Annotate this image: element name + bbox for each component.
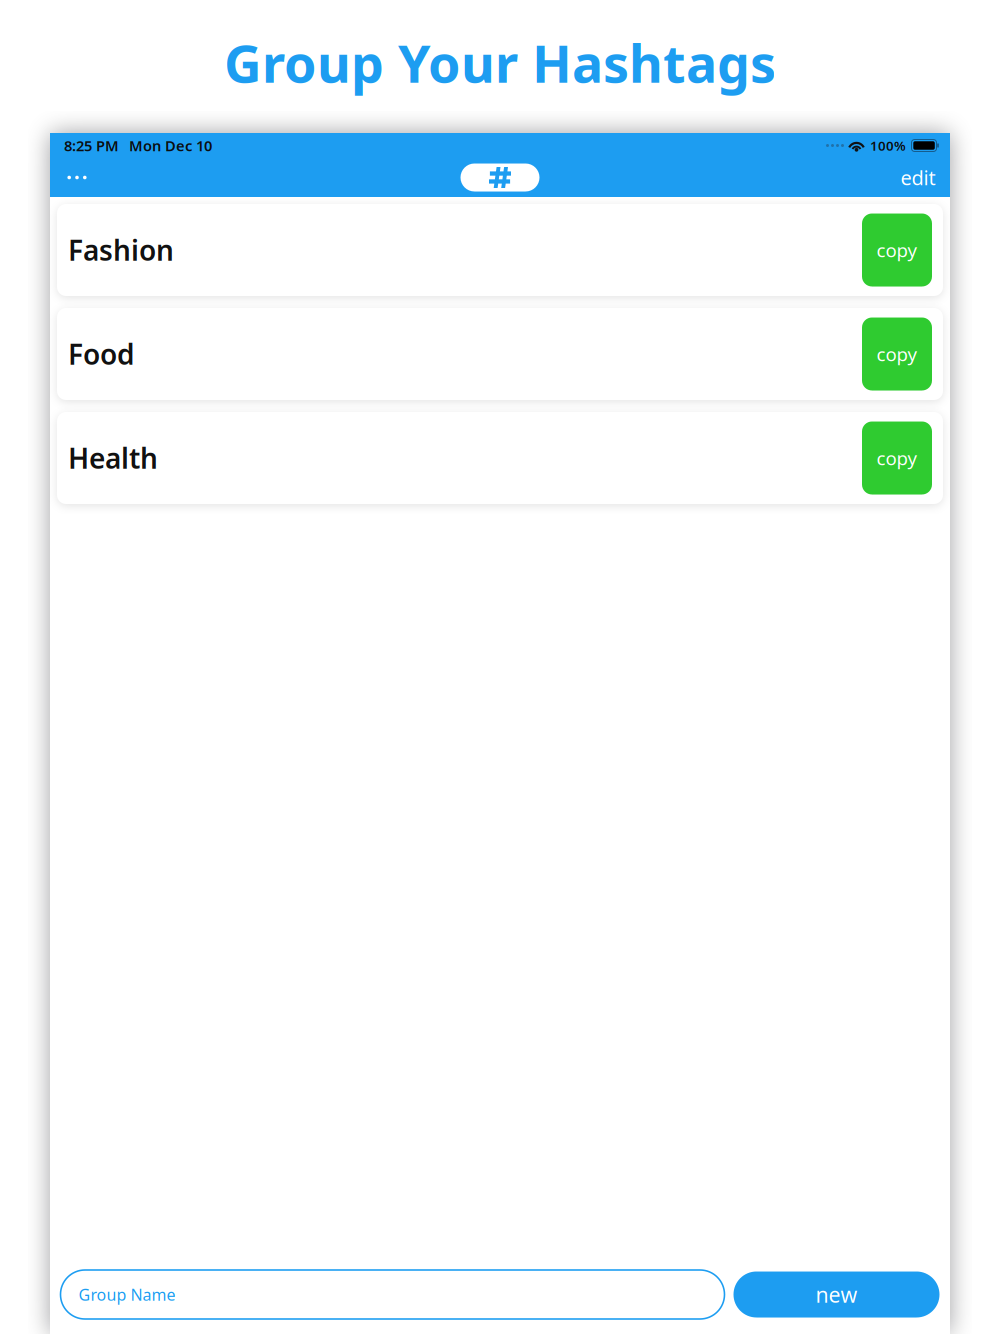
staticText: edit	[900, 164, 935, 191]
staticText: copy	[876, 238, 917, 262]
staticText: 8:25 PM	[64, 136, 119, 155]
staticText: Fashion	[68, 231, 174, 269]
button[interactable]: Hashtags	[460, 163, 539, 191]
staticText: 100%	[870, 137, 906, 154]
staticText: Food	[68, 335, 135, 373]
staticText: Group Your Hashtags	[224, 28, 776, 97]
staticText: new	[815, 1280, 857, 1309]
staticText: copy	[876, 342, 917, 366]
button[interactable]: copy	[862, 421, 932, 494]
staticText: copy	[876, 446, 917, 470]
button[interactable]: More	[63, 158, 91, 197]
button[interactable]: Group Name	[60, 1270, 724, 1319]
button[interactable]: edit	[896, 158, 940, 197]
button[interactable]: copy	[862, 317, 932, 390]
staticText: Mon Dec 10	[129, 136, 212, 155]
button[interactable]: new	[733, 1271, 939, 1317]
button[interactable]: Health	[57, 412, 943, 504]
button[interactable]: Food	[57, 308, 943, 400]
button[interactable]: Fashion	[57, 204, 943, 296]
staticText: Health	[68, 439, 158, 477]
button[interactable]: copy	[862, 213, 932, 286]
staticText: Group Name	[78, 1284, 175, 1305]
